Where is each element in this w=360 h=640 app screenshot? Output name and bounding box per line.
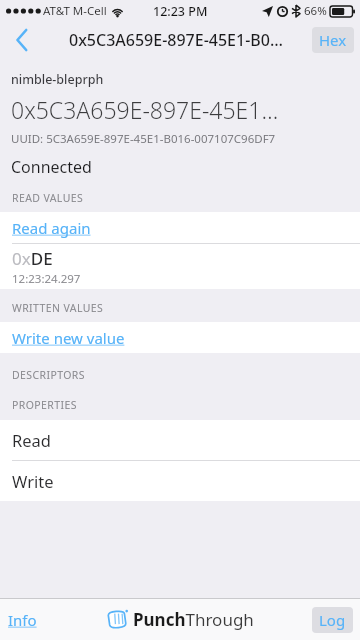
button[interactable]: Info	[0, 604, 45, 636]
staticText: 12:23:24.297	[12, 271, 81, 287]
staticText: READ VALUES	[12, 191, 84, 205]
staticText: UUID: 5C3A659E-897E-45E1-B016-007107C96D…	[11, 131, 276, 147]
button[interactable]: Write new value	[0, 322, 360, 353]
button[interactable]: Log	[312, 607, 353, 633]
button[interactable]: Hex	[312, 27, 354, 53]
staticText: 0x5C3A659E-897E-45E1…	[11, 94, 279, 125]
staticText: nimble-bleprph	[11, 71, 104, 88]
staticText: 66%	[304, 3, 327, 19]
button[interactable]: Read	[0, 420, 360, 460]
button[interactable]: 0xDE	[0, 244, 360, 289]
staticText: Read again	[12, 218, 91, 238]
staticText: 0x5C3A659E-897E-45E1-B0…	[69, 29, 283, 51]
staticText: Write	[12, 470, 54, 492]
button[interactable]: Read again	[0, 212, 360, 243]
staticText: DESCRIPTORS	[12, 368, 85, 382]
staticText: PunchThrough	[133, 608, 254, 631]
staticText: 0xDE	[12, 247, 53, 270]
staticText: Log	[319, 610, 346, 630]
staticText: Write new value	[12, 328, 125, 348]
staticText: Connected	[11, 156, 92, 178]
staticText: Info	[8, 610, 37, 630]
staticText: 12:23 PM	[153, 3, 208, 20]
staticText: PROPERTIES	[12, 398, 77, 412]
staticText: WRITTEN VALUES	[12, 301, 104, 315]
button[interactable]: Write	[0, 461, 360, 501]
staticText: Hex	[319, 30, 347, 50]
button[interactable]: Back	[0, 22, 44, 58]
staticText: Read	[12, 429, 51, 451]
staticText: AT&T M-Cell	[43, 3, 107, 19]
